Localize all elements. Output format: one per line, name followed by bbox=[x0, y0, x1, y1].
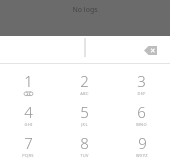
staticText: 3 bbox=[137, 71, 146, 91]
button[interactable]: 6 bbox=[113, 99, 170, 130]
staticText: WXYZ bbox=[136, 153, 148, 158]
staticText: 6 bbox=[137, 102, 146, 122]
staticText: ABC bbox=[80, 91, 89, 96]
staticText: DEF bbox=[137, 91, 146, 96]
staticText: 7 bbox=[24, 133, 33, 153]
button[interactable]: 7 bbox=[0, 130, 56, 160]
staticText: MNO bbox=[136, 122, 147, 127]
button[interactable]: 9 bbox=[113, 130, 170, 160]
staticText: PQRS bbox=[22, 153, 34, 158]
staticText: 8 bbox=[80, 133, 89, 153]
button[interactable]: 2 bbox=[56, 68, 113, 99]
button[interactable]: 1 bbox=[0, 68, 56, 99]
staticText: 4 bbox=[24, 102, 33, 122]
staticText: GHI bbox=[24, 122, 33, 127]
staticText: 2 bbox=[80, 71, 89, 91]
button[interactable]: Backspace bbox=[140, 41, 160, 59]
staticText: 9 bbox=[138, 133, 147, 153]
staticText: 5 bbox=[80, 102, 89, 122]
staticText: 1 bbox=[24, 71, 33, 91]
button[interactable]: 5 bbox=[56, 99, 113, 130]
button[interactable]: 4 bbox=[0, 99, 56, 130]
staticText: TUV bbox=[80, 153, 89, 158]
staticText: JKL bbox=[81, 122, 88, 127]
staticText: No logs bbox=[72, 5, 98, 15]
button[interactable]: 3 bbox=[113, 68, 170, 99]
button[interactable]: 8 bbox=[56, 130, 113, 160]
